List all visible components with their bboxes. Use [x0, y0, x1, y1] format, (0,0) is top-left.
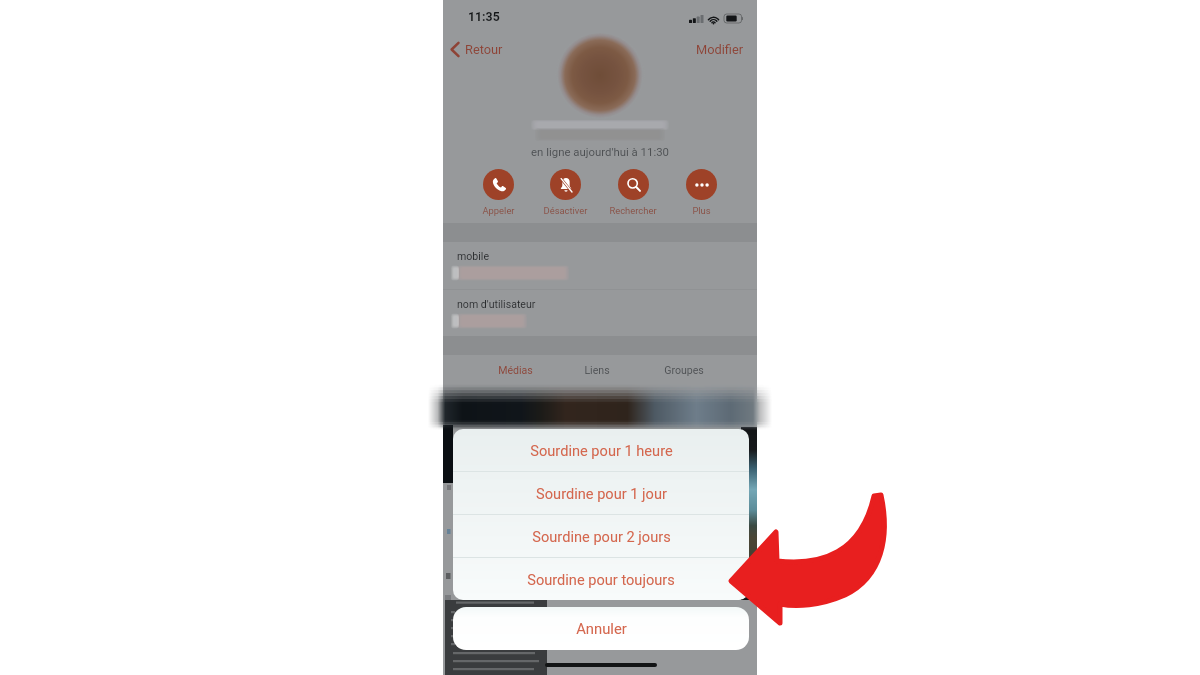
button[interactable]: Liens: [555, 355, 639, 385]
staticText: Liens: [584, 364, 610, 376]
staticText: Annuler: [576, 620, 627, 637]
button[interactable]: Modifier: [691, 38, 749, 61]
button[interactable]: Plus: [667, 169, 735, 216]
staticText: Sourdine pour 1 jour: [536, 485, 667, 502]
button[interactable]: Rechercher: [599, 169, 667, 216]
button[interactable]: Sourdine pour 1 heure: [453, 429, 749, 471]
staticText: Médias: [498, 364, 533, 376]
button[interactable]: Groupes: [642, 355, 726, 385]
staticText: 11:35: [468, 10, 500, 24]
button[interactable]: Désactiver: [531, 169, 599, 216]
button[interactable]: Annuler: [453, 607, 749, 650]
button[interactable]: Appeler: [464, 169, 532, 216]
button[interactable]: Sourdine pour 2 jours: [453, 515, 749, 557]
staticText: Modifier: [696, 42, 744, 57]
staticText: Appeler: [482, 205, 515, 216]
staticText: Rechercher: [609, 205, 657, 216]
staticText: Retour: [465, 42, 503, 57]
staticText: Sourdine pour toujours: [527, 571, 675, 588]
staticText: Sourdine pour 2 jours: [532, 528, 671, 545]
button[interactable]: Retour: [445, 38, 508, 61]
button[interactable]: nom d'utilisateur: [443, 290, 757, 337]
staticText: Plus: [692, 205, 711, 216]
staticText: Groupes: [664, 364, 704, 376]
staticText: en ligne aujourd'hui à 11:30: [531, 145, 669, 158]
staticText: Désactiver: [543, 205, 588, 216]
button[interactable]: mobile: [443, 242, 757, 289]
button[interactable]: Médias: [473, 355, 557, 385]
staticText: nom d'utilisateur: [457, 298, 536, 310]
button[interactable]: Sourdine pour 1 jour: [453, 472, 749, 514]
staticText: Sourdine pour 1 heure: [530, 442, 673, 459]
button[interactable]: Sourdine pour toujours: [453, 558, 749, 600]
staticText: mobile: [457, 250, 490, 262]
